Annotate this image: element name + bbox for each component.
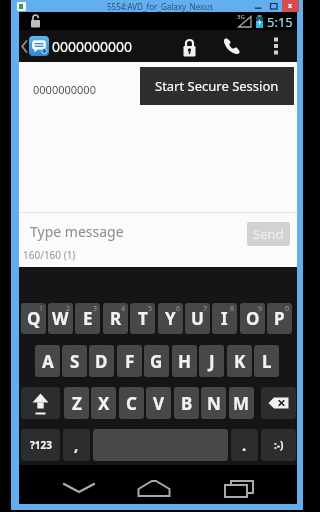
staticText: S — [70, 350, 80, 373]
staticText: V — [153, 392, 165, 415]
staticText: F — [125, 350, 135, 373]
button[interactable]: U — [185, 303, 210, 334]
staticText: Type message — [30, 222, 124, 241]
staticText: E — [83, 307, 93, 330]
button[interactable]: I — [212, 303, 237, 334]
button[interactable]: W — [48, 303, 73, 334]
button[interactable]: O — [240, 303, 265, 334]
staticText: 9 — [258, 304, 263, 314]
staticText: N — [207, 392, 221, 415]
staticText: M — [233, 392, 250, 415]
staticText: :-) — [274, 438, 284, 452]
button[interactable] — [224, 469, 255, 498]
staticText: 4 — [121, 304, 126, 314]
button[interactable]: P — [267, 303, 292, 334]
staticText: H — [178, 350, 192, 373]
button[interactable]: H — [172, 345, 197, 377]
button[interactable]: A — [35, 345, 60, 377]
staticText: 5554:AVD_for_Galaxy_Nexus — [107, 1, 214, 12]
staticText: 3G — [237, 13, 245, 21]
staticText: W — [52, 307, 69, 330]
staticText: P — [274, 307, 285, 330]
staticText: 0000000000 — [52, 37, 133, 56]
button[interactable]: Z — [64, 387, 89, 419]
button[interactable] — [29, 36, 49, 56]
button[interactable]: ?123 — [21, 429, 60, 461]
staticText: 5:15 — [267, 13, 293, 29]
staticText: Z — [72, 392, 82, 415]
button[interactable] — [271, 36, 281, 56]
staticText: C — [126, 392, 137, 415]
staticText: R — [110, 307, 122, 330]
staticText: Q — [27, 307, 41, 330]
button[interactable] — [137, 469, 171, 498]
button[interactable]: x — [282, 0, 299, 12]
button[interactable]: Q — [21, 303, 46, 334]
button[interactable]: C — [119, 387, 144, 419]
staticText: L — [262, 350, 272, 373]
button[interactable]: V — [146, 387, 171, 419]
button[interactable]: M — [229, 387, 254, 419]
staticText: 8 — [230, 304, 235, 314]
button[interactable]: . — [231, 429, 258, 461]
staticText: Send — [253, 225, 284, 243]
staticText: 1 — [39, 304, 44, 314]
staticText: D — [95, 350, 108, 373]
button[interactable]: F — [117, 345, 142, 377]
staticText: 6 — [176, 304, 181, 314]
staticText: G — [150, 350, 163, 373]
staticText: X — [98, 392, 110, 415]
button[interactable]: :-) — [261, 429, 296, 461]
staticText: 5 — [148, 304, 153, 314]
button[interactable] — [62, 481, 96, 495]
button[interactable]: S — [62, 345, 87, 377]
button[interactable]: L — [254, 345, 279, 377]
button[interactable]: X — [91, 387, 116, 419]
staticText: 3 — [93, 304, 98, 314]
button[interactable] — [19, 30, 297, 62]
staticText: Y — [165, 307, 176, 330]
button[interactable]: N — [201, 387, 226, 419]
staticText: J — [209, 350, 215, 373]
button[interactable]: Send — [247, 222, 290, 246]
staticText: A — [42, 350, 54, 373]
staticText: 0 — [285, 304, 290, 314]
button[interactable]: T — [130, 303, 155, 334]
staticText: U — [191, 307, 204, 330]
button[interactable]: Y — [158, 303, 183, 334]
button[interactable]: Type message — [30, 215, 180, 247]
staticText: 2 — [66, 304, 71, 314]
staticText: 0000000000 — [33, 82, 96, 96]
staticText: K — [234, 350, 246, 373]
button[interactable]: R — [103, 303, 128, 334]
button[interactable] — [182, 37, 197, 59]
button[interactable]: K — [227, 345, 252, 377]
staticText: Start Secure Session — [155, 77, 279, 95]
staticText: T — [138, 307, 148, 330]
button[interactable] — [21, 387, 60, 419]
button[interactable] — [261, 387, 296, 419]
staticText: x — [288, 1, 293, 11]
staticText: . — [242, 435, 247, 455]
button[interactable]: J — [199, 345, 224, 377]
staticText: 7 — [203, 304, 208, 314]
staticText: B — [181, 392, 193, 415]
button[interactable] — [21, 40, 28, 53]
staticText: , — [74, 435, 79, 455]
staticText: 160/160 (1) — [23, 248, 76, 261]
staticText: ?123 — [30, 438, 52, 452]
button[interactable]: D — [89, 345, 114, 377]
staticText: O — [246, 307, 260, 330]
button[interactable]: G — [144, 345, 169, 377]
button[interactable]: , — [63, 429, 90, 461]
staticText: I — [221, 307, 228, 330]
button[interactable]: E — [75, 303, 100, 334]
button[interactable]: Start Secure Session — [140, 67, 294, 105]
button[interactable] — [222, 36, 242, 56]
button[interactable]: B — [174, 387, 199, 419]
